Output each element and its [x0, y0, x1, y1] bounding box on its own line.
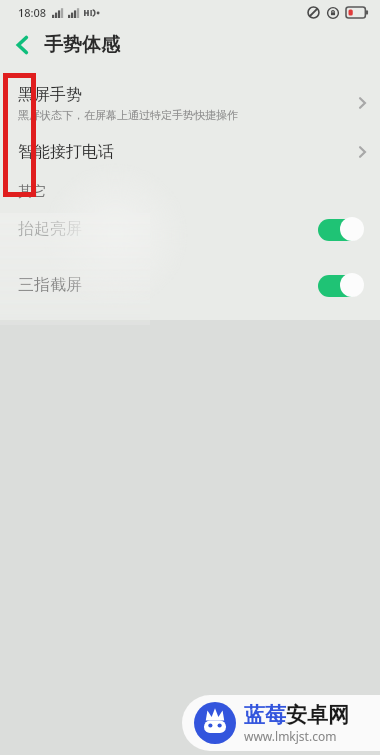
- staticText: 其它: [18, 183, 46, 201]
- staticText: 黑屏状态下，在屏幕上通过特定手势快捷操作: [18, 108, 238, 122]
- staticText: 三指截屏: [18, 275, 318, 295]
- staticText: 18:08: [18, 5, 47, 20]
- button[interactable]: 黑屏手势: [0, 77, 380, 129]
- button[interactable]: Toggle on: [318, 217, 364, 241]
- staticText: 黑屏手势: [18, 85, 82, 105]
- button[interactable]: 三指截屏: [0, 263, 380, 307]
- staticText: 蓝莓: [244, 702, 286, 728]
- button[interactable]: Toggle on: [318, 273, 364, 297]
- button[interactable]: 抬起亮屏: [0, 207, 380, 251]
- staticText: 安卓网: [286, 702, 349, 728]
- staticText: 智能接打电话: [18, 142, 114, 162]
- staticText: 抬起亮屏: [18, 219, 318, 239]
- button[interactable]: Back: [0, 25, 44, 65]
- staticText: www.lmkjst.com: [244, 728, 337, 744]
- staticText: 手势体感: [44, 33, 120, 57]
- button[interactable]: 智能接打电话: [0, 129, 380, 175]
